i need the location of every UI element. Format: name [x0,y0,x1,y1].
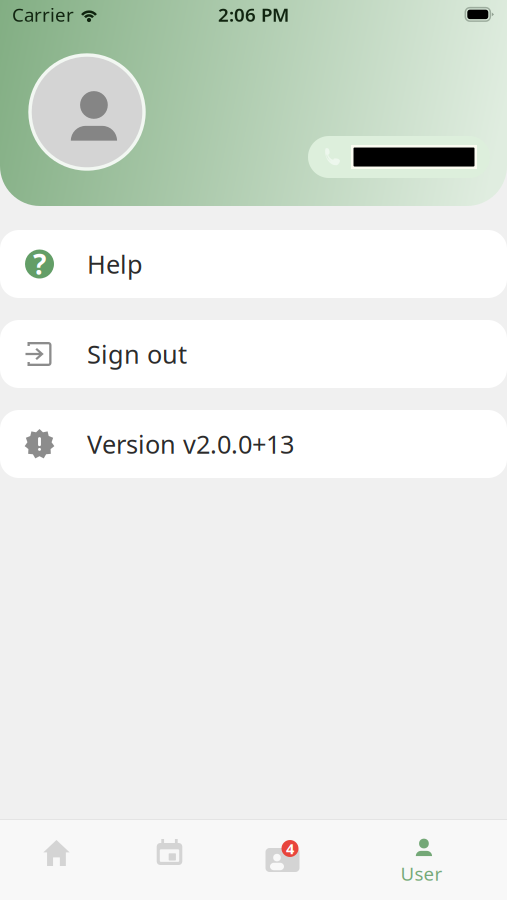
button[interactable]: Sign out [0,320,507,388]
button[interactable]: ? [0,230,507,298]
button[interactable]: User [339,819,478,900]
button[interactable]: Phone number [308,136,490,178]
staticText: 2:06 PM [218,2,289,27]
staticText: Carrier [12,2,74,27]
staticText: Version v2.0.0+13 [87,427,294,461]
button[interactable]: Version v2.0.0+13 [0,410,507,478]
staticText: Help [87,247,143,281]
button[interactable]: Contacts [226,819,339,900]
staticText: Sign out [87,337,187,371]
button[interactable]: Calendar [113,819,226,900]
staticText: ? [33,245,46,283]
staticText: 4 [286,839,294,858]
button[interactable]: Home [0,819,113,900]
staticText: User [400,861,442,886]
